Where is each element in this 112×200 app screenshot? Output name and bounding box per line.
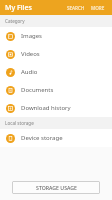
- staticText: Local storage: [5, 120, 34, 126]
- staticText: My Files: [5, 3, 32, 13]
- staticText: MORE: [91, 5, 105, 11]
- staticText: Download history: [21, 104, 71, 112]
- staticText: Videos: [21, 50, 40, 58]
- button[interactable]: Documents: [0, 81, 112, 99]
- staticText: Documents: [21, 86, 54, 94]
- staticText: Device storage: [21, 134, 63, 142]
- button[interactable]: Audio: [0, 63, 112, 81]
- button[interactable]: Images: [0, 27, 112, 45]
- button[interactable]: STORAGE USAGE: [12, 181, 100, 194]
- button[interactable]: Device storage: [0, 129, 112, 147]
- staticText: Category: [5, 18, 25, 24]
- staticText: SEARCH: [67, 5, 85, 11]
- button[interactable]: Videos: [0, 45, 112, 63]
- staticText: Images: [21, 32, 42, 40]
- button[interactable]: Download history: [0, 99, 112, 117]
- button[interactable]: SEARCH: [64, 2, 88, 14]
- button[interactable]: MORE: [88, 2, 108, 14]
- staticText: STORAGE USAGE: [36, 184, 77, 191]
- staticText: Audio: [21, 68, 38, 76]
